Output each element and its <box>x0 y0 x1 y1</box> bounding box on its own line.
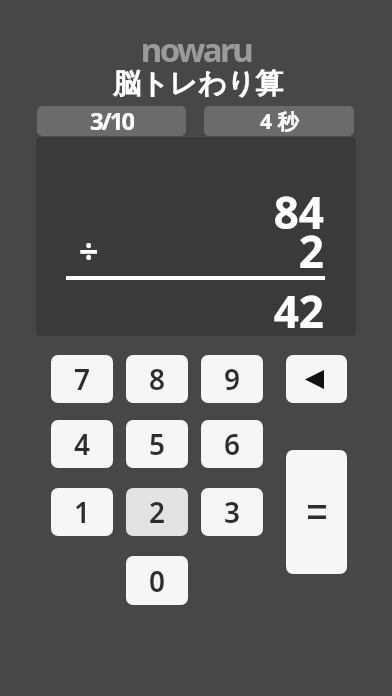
staticText: 7 <box>74 360 91 398</box>
staticText: 3 <box>224 493 241 531</box>
button[interactable]: 9 <box>201 355 263 403</box>
staticText: 5 <box>149 425 166 463</box>
staticText: 0 <box>149 562 166 600</box>
staticText: nowaru <box>0 27 392 72</box>
staticText: 8 <box>149 360 166 398</box>
staticText: 2 <box>149 493 166 531</box>
button[interactable]: 1 <box>51 488 113 536</box>
button[interactable]: 5 <box>126 420 188 468</box>
button[interactable] <box>286 450 347 574</box>
button[interactable]: 7 <box>51 355 113 403</box>
staticText: 6 <box>224 425 241 463</box>
button[interactable] <box>286 355 347 403</box>
button[interactable]: 4 <box>51 420 113 468</box>
button[interactable]: 6 <box>201 420 263 468</box>
staticText: 9 <box>224 360 241 398</box>
staticText: 4 <box>74 425 91 463</box>
staticText: 1 <box>74 493 91 531</box>
button[interactable]: 2 <box>126 488 188 536</box>
staticText: 42 <box>36 281 324 336</box>
staticText: ÷ <box>79 228 99 274</box>
staticText: 2 <box>36 221 324 281</box>
button[interactable]: 8 <box>126 355 188 403</box>
staticText: 脳トレわり算 <box>2 66 392 101</box>
button[interactable]: 3 <box>201 488 263 536</box>
button[interactable]: 0 <box>126 556 188 605</box>
staticText: 3/10 <box>90 106 134 134</box>
staticText: 4 秒 <box>260 107 299 136</box>
staticText: 84 <box>36 182 324 242</box>
